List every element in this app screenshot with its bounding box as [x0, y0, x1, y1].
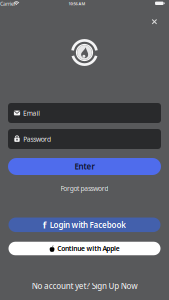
button[interactable]: No account yet? Sign Up Now: [32, 281, 137, 291]
button[interactable]: Continue with Apple: [8, 242, 160, 255]
staticText: Carrier: [0, 0, 16, 7]
staticText: Email: [23, 109, 40, 118]
staticText: Enter: [74, 161, 94, 172]
button[interactable]: Forgot password: [61, 184, 108, 193]
button[interactable]: Close: [151, 18, 158, 25]
button[interactable]: f: [8, 218, 160, 232]
button[interactable]: Enter: [8, 158, 161, 175]
staticText: Continue with Apple: [57, 244, 120, 253]
staticText: No account yet? Sign Up Now: [32, 281, 137, 291]
staticText: 10:56 AM: [68, 1, 85, 6]
staticText: Password: [23, 135, 51, 144]
staticText: f: [43, 219, 47, 231]
staticText: Login with Facebook: [50, 219, 126, 230]
staticText: Forgot password: [61, 184, 108, 193]
